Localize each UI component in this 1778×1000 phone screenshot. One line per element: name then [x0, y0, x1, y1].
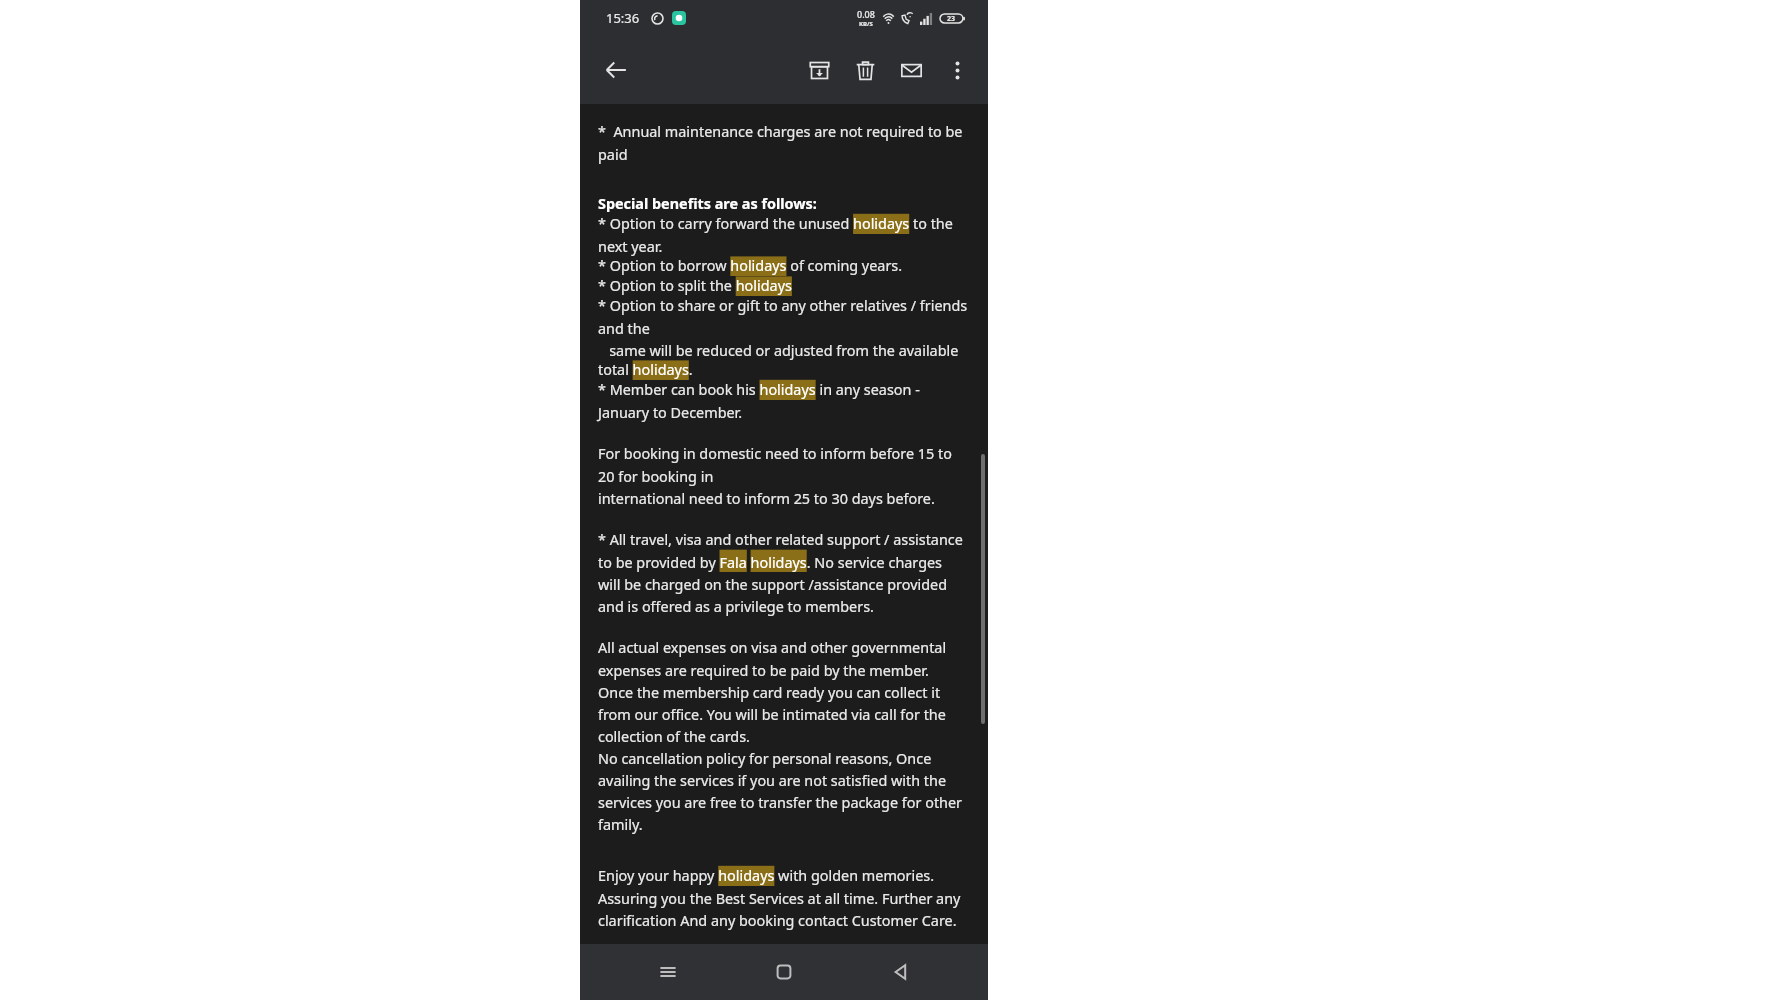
- button[interactable]: Archive: [796, 47, 842, 93]
- staticText: 15:36: [606, 9, 640, 27]
- staticText: 23: [947, 14, 956, 24]
- staticText: * Option to borrow holidays of coming ye…: [598, 256, 903, 276]
- button[interactable]: Mark unread: [888, 47, 934, 93]
- staticText: KB/S: [859, 20, 873, 28]
- button[interactable]: Delete: [842, 47, 888, 93]
- staticText: For booking in domestic need to inform b…: [598, 444, 952, 508]
- button[interactable]: More options: [934, 47, 980, 93]
- staticText: * Option to split the holidays: [598, 276, 792, 296]
- staticText: * Option to share or gift to any other r…: [598, 296, 968, 360]
- staticText: 0.08: [857, 8, 875, 20]
- staticText: * Option to carry forward the unused hol…: [598, 214, 953, 256]
- staticText: Special benefits are as follows:: [598, 194, 817, 214]
- button[interactable]: Recent apps: [640, 944, 696, 1000]
- staticText: * Member can book his holidays in any se…: [598, 380, 920, 422]
- button[interactable]: Back: [594, 48, 638, 92]
- button[interactable]: Home: [756, 944, 812, 1000]
- staticText: Enjoy your happy holidays with golden me…: [598, 866, 961, 930]
- staticText: All actual expenses on visa and other go…: [598, 638, 963, 834]
- staticText: * All travel, visa and other related sup…: [598, 530, 963, 616]
- button[interactable]: Back: [872, 944, 928, 1000]
- staticText: * Annual maintenance charges are not req…: [598, 122, 963, 164]
- staticText: total holidays.: [598, 360, 693, 380]
